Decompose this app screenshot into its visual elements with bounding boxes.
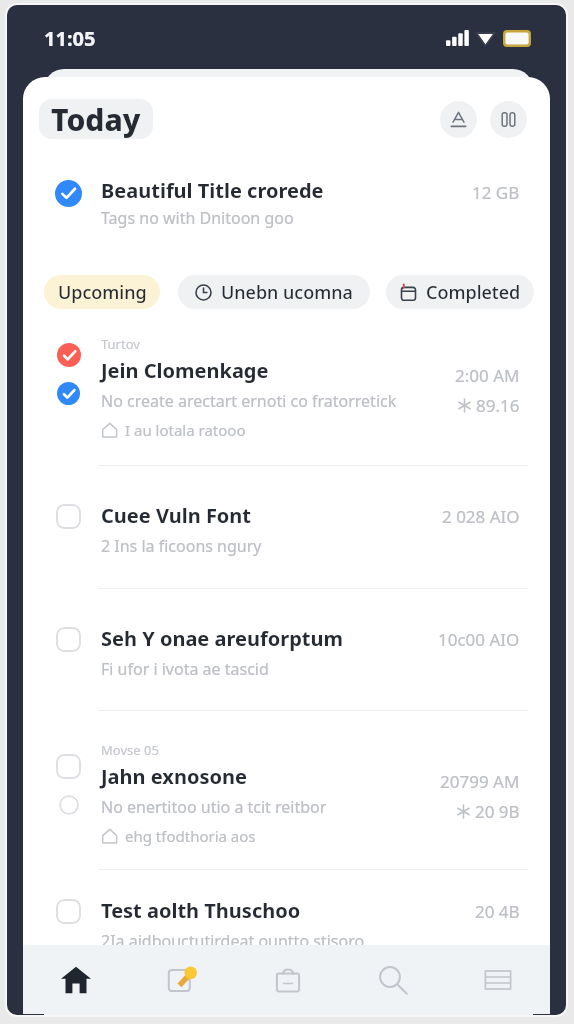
button[interactable]: Turtov: [23, 309, 550, 465]
staticText: Cuee Vuln Font: [101, 502, 252, 529]
staticText: 20 4B: [475, 900, 520, 923]
staticText: 2 028 AIO: [442, 505, 520, 528]
staticText: 10c00 AIO: [438, 628, 520, 651]
staticText: 2:00 AM: [455, 364, 520, 387]
button[interactable]: Tasks: [235, 945, 340, 1014]
staticText: 20799 AM: [440, 770, 520, 793]
staticText: Completed: [426, 280, 521, 305]
button[interactable]: Compose: [129, 945, 235, 1014]
staticText: 20 9B: [475, 800, 520, 823]
staticText: Beautiful Title crorede: [101, 177, 324, 204]
button[interactable]: Cuee Vuln Font: [23, 466, 550, 588]
button[interactable]: Today: [39, 99, 153, 139]
button[interactable]: Filter: [490, 101, 527, 138]
staticText: Seh Y onae areuforptum: [101, 625, 343, 652]
button[interactable]: Test aolth Thuschoo: [23, 870, 550, 992]
staticText: 2Ia aidbouctutirdeat ountto stisoro: [101, 930, 365, 952]
button[interactable]: Sort: [440, 101, 477, 138]
staticText: 2 Ins la ficoons ngury: [101, 535, 262, 557]
staticText: 12 GB: [472, 181, 520, 204]
staticText: No enertitoo utio a tcit reitbor: [101, 796, 327, 818]
staticText: Today: [51, 99, 141, 139]
button[interactable]: Completed: [386, 275, 534, 309]
staticText: Turtov: [101, 335, 140, 353]
staticText: I au lotala ratooo: [125, 420, 246, 440]
button[interactable]: Unebn ucomna: [178, 275, 370, 309]
button[interactable]: Search: [340, 945, 445, 1014]
button[interactable]: List: [445, 945, 550, 1014]
staticText: 11:05: [44, 25, 96, 52]
button[interactable]: Upcoming: [44, 275, 160, 309]
staticText: 89.16: [476, 394, 520, 417]
staticText: Movse 05: [101, 741, 159, 759]
staticText: Tags no with Dnitoon goo: [101, 207, 294, 229]
button[interactable]: Movse 05: [23, 711, 550, 869]
staticText: No create arectart ernoti co fratorretic…: [101, 390, 397, 412]
staticText: Jahn exnosone: [101, 763, 247, 790]
staticText: Unebn ucomna: [221, 280, 353, 305]
staticText: Fi ufor i ivota ae tascid: [101, 658, 269, 680]
button[interactable]: Seh Y onae areuforptum: [23, 589, 550, 710]
button[interactable]: Home: [23, 945, 129, 1014]
staticText: ehg tfodthoria aos: [125, 826, 256, 846]
staticText: Test aolth Thuschoo: [101, 897, 301, 924]
button[interactable]: Beautiful Title crorede: [23, 180, 550, 232]
staticText: Upcoming: [58, 280, 147, 305]
staticText: Jein Clomenkage: [101, 357, 269, 384]
